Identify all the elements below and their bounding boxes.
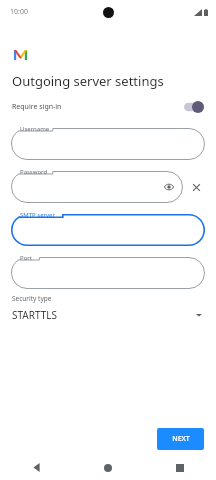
- button[interactable]: Security type: [0, 294, 216, 322]
- staticText: Require sign-in: [12, 102, 62, 112]
- button[interactable]: Home: [72, 455, 144, 480]
- button[interactable]: Back: [0, 455, 72, 480]
- button[interactable]: Username: [11, 128, 205, 160]
- staticText: Port: [20, 254, 32, 262]
- button[interactable]: Clear password: [188, 179, 204, 195]
- staticText: SMTP server: [20, 211, 55, 219]
- staticText: STARTTLS: [12, 308, 58, 322]
- staticText: Security type: [12, 294, 52, 303]
- button[interactable]: Require sign-in: [0, 97, 216, 117]
- staticText: 10:00: [10, 7, 28, 17]
- button[interactable]: Show password: [163, 181, 175, 193]
- staticText: NEXT: [172, 434, 190, 444]
- button[interactable]: SMTP server: [11, 214, 205, 246]
- button[interactable]: Port: [11, 257, 205, 289]
- button[interactable]: Recent apps: [144, 455, 216, 480]
- button[interactable]: NEXT: [157, 428, 204, 450]
- staticText: Outgoing server settings: [12, 72, 164, 90]
- staticText: Username: [20, 125, 50, 133]
- staticText: Password: [20, 168, 48, 176]
- button[interactable]: Require sign-in toggle: [184, 101, 204, 113]
- button[interactable]: Password: [11, 171, 183, 203]
